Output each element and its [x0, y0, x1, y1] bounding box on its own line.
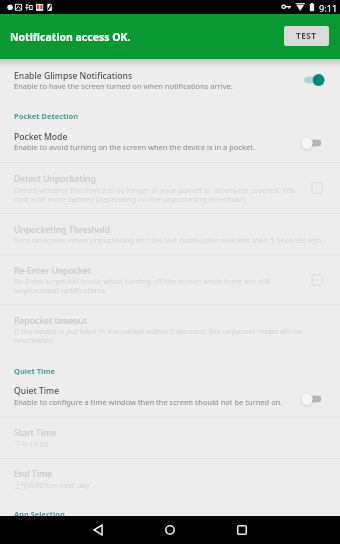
staticText: Enable Glimpse Notifications	[14, 70, 133, 82]
staticText: Pocket Detection	[14, 111, 79, 121]
button[interactable]: Back	[76, 516, 120, 544]
button[interactable]: Switch off	[298, 386, 340, 412]
button[interactable]: Home	[148, 516, 192, 544]
staticText: 9:11	[319, 2, 338, 15]
staticText: Enable to avoid turning on the screen wh…	[14, 142, 255, 152]
button[interactable]: Repocket timeout	[0, 305, 340, 349]
button[interactable]: Switch on	[298, 67, 340, 93]
staticText: Unpocketing Threshold	[14, 224, 110, 236]
button[interactable]: Enable Glimpse Notifications	[0, 59, 340, 100]
button[interactable]: Recent apps	[220, 516, 264, 544]
button[interactable]: Switch off	[298, 130, 340, 156]
staticText: Enable to have the screen turned on when…	[14, 81, 233, 91]
staticText: Quiet Time	[14, 366, 56, 376]
staticText: Turn on screen when unpocketing and the …	[14, 235, 324, 245]
button[interactable]: Re-Enter Unpocket	[0, 255, 340, 304]
staticText: Pocket Mode	[14, 131, 68, 143]
button[interactable]: Detect Unpocketing	[0, 163, 340, 213]
staticText: Detect whether the device is no longer i…	[14, 185, 306, 204]
button[interactable]: Pocket Mode	[0, 124, 340, 162]
staticText: Start Time	[14, 427, 57, 439]
staticText: Notification access OK.	[10, 30, 131, 44]
staticText: Re-Enter unpocket mode when turning off …	[14, 276, 306, 295]
staticText: TEST	[296, 30, 317, 41]
button[interactable]: TEST	[284, 26, 329, 46]
staticText: App Selection	[14, 509, 65, 519]
staticText: Repocket timeout	[14, 315, 88, 327]
staticText: Quiet Time	[14, 385, 60, 397]
button[interactable]: Quiet Time	[0, 380, 340, 417]
staticText: 上午6:00 the next day	[14, 480, 90, 490]
staticText: End Time	[14, 468, 52, 480]
staticText: Re-Enter Unpocket	[14, 265, 91, 277]
button[interactable]: End Time	[0, 459, 340, 499]
staticText: Detect Unpocketing	[14, 173, 96, 185]
staticText: Enable to configure a time window then t…	[14, 397, 283, 407]
staticText: If the device is put back in the pocket …	[14, 326, 328, 345]
button[interactable]: Unpocketing Threshold	[0, 214, 340, 254]
staticText: 下午10:00	[14, 439, 49, 449]
